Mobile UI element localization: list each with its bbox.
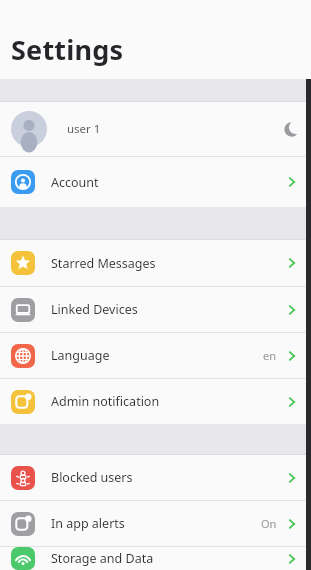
staticText: Linked Devices <box>51 301 138 318</box>
staticText: Account <box>51 174 99 191</box>
staticText: user 1 <box>67 121 101 137</box>
staticText: en <box>263 348 277 363</box>
staticText: Language <box>51 347 110 364</box>
staticText: Starred Messages <box>51 255 156 272</box>
button[interactable]: Language <box>0 333 311 378</box>
button[interactable]: Blocked users <box>0 455 311 500</box>
staticText: Settings <box>11 31 124 68</box>
staticText: Admin notification <box>51 393 160 410</box>
button[interactable]: Storage and Data <box>0 547 311 570</box>
staticText: On <box>261 516 277 531</box>
other: Do not disturb <box>283 121 300 138</box>
staticText: Storage and Data <box>51 550 154 567</box>
button[interactable]: user 1 <box>0 102 311 156</box>
button[interactable]: In app alerts <box>0 501 311 546</box>
button[interactable]: Linked Devices <box>0 287 311 332</box>
button[interactable]: Starred Messages <box>0 240 311 286</box>
staticText: In app alerts <box>51 515 125 532</box>
button[interactable]: Admin notification <box>0 379 311 424</box>
button[interactable]: Account <box>0 157 311 207</box>
staticText: Blocked users <box>51 469 133 486</box>
